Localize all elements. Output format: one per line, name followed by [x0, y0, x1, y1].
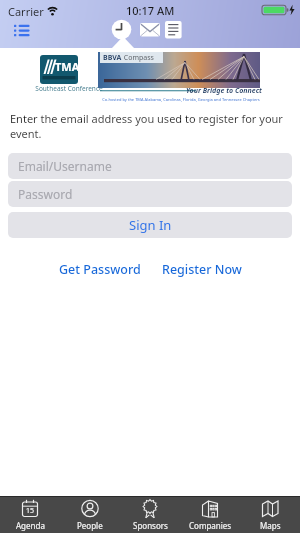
staticText: Your Bridge to Connect [186, 86, 262, 96]
staticText: Companies [189, 520, 232, 531]
staticText: Password [18, 186, 73, 202]
button[interactable]: Get Password [40, 260, 160, 278]
staticText: TMA [55, 59, 78, 74]
staticText: Register Now [162, 261, 242, 278]
staticText: 10:17 AM [126, 3, 175, 18]
staticText: Compass [122, 53, 154, 63]
staticText: 15 [26, 506, 35, 516]
button[interactable]: Sponsors [120, 496, 180, 533]
button[interactable]: Register Now [142, 260, 262, 278]
button[interactable]: Sign In [8, 212, 292, 238]
button[interactable]: 15 [0, 496, 60, 533]
staticText: Agenda [16, 520, 45, 531]
button[interactable]: Companies [180, 496, 240, 533]
staticText: BBVA [103, 53, 122, 63]
staticText: Carrier [8, 4, 44, 19]
staticText: People [77, 520, 103, 531]
staticText: Sponsors [133, 520, 168, 531]
staticText: Email/Username [18, 158, 112, 174]
button[interactable] [10, 21, 36, 41]
staticText: Sign In [129, 216, 172, 234]
button[interactable]: People [60, 496, 120, 533]
staticText: Get Password [59, 261, 141, 278]
staticText: Enter the email address you used to regi… [10, 111, 283, 141]
button[interactable] [162, 18, 186, 41]
button[interactable]: Password [8, 181, 292, 207]
staticText: Maps [260, 520, 281, 531]
button[interactable] [110, 18, 133, 41]
staticText: Southeast Conference [34, 84, 104, 93]
button[interactable] [137, 20, 163, 40]
button[interactable]: Maps [240, 496, 300, 533]
button[interactable]: Email/Username [8, 153, 292, 179]
staticText: Co-hosted by the TMA Alabama, Carolinas,… [100, 97, 262, 102]
button[interactable]: TMA [0, 48, 300, 103]
